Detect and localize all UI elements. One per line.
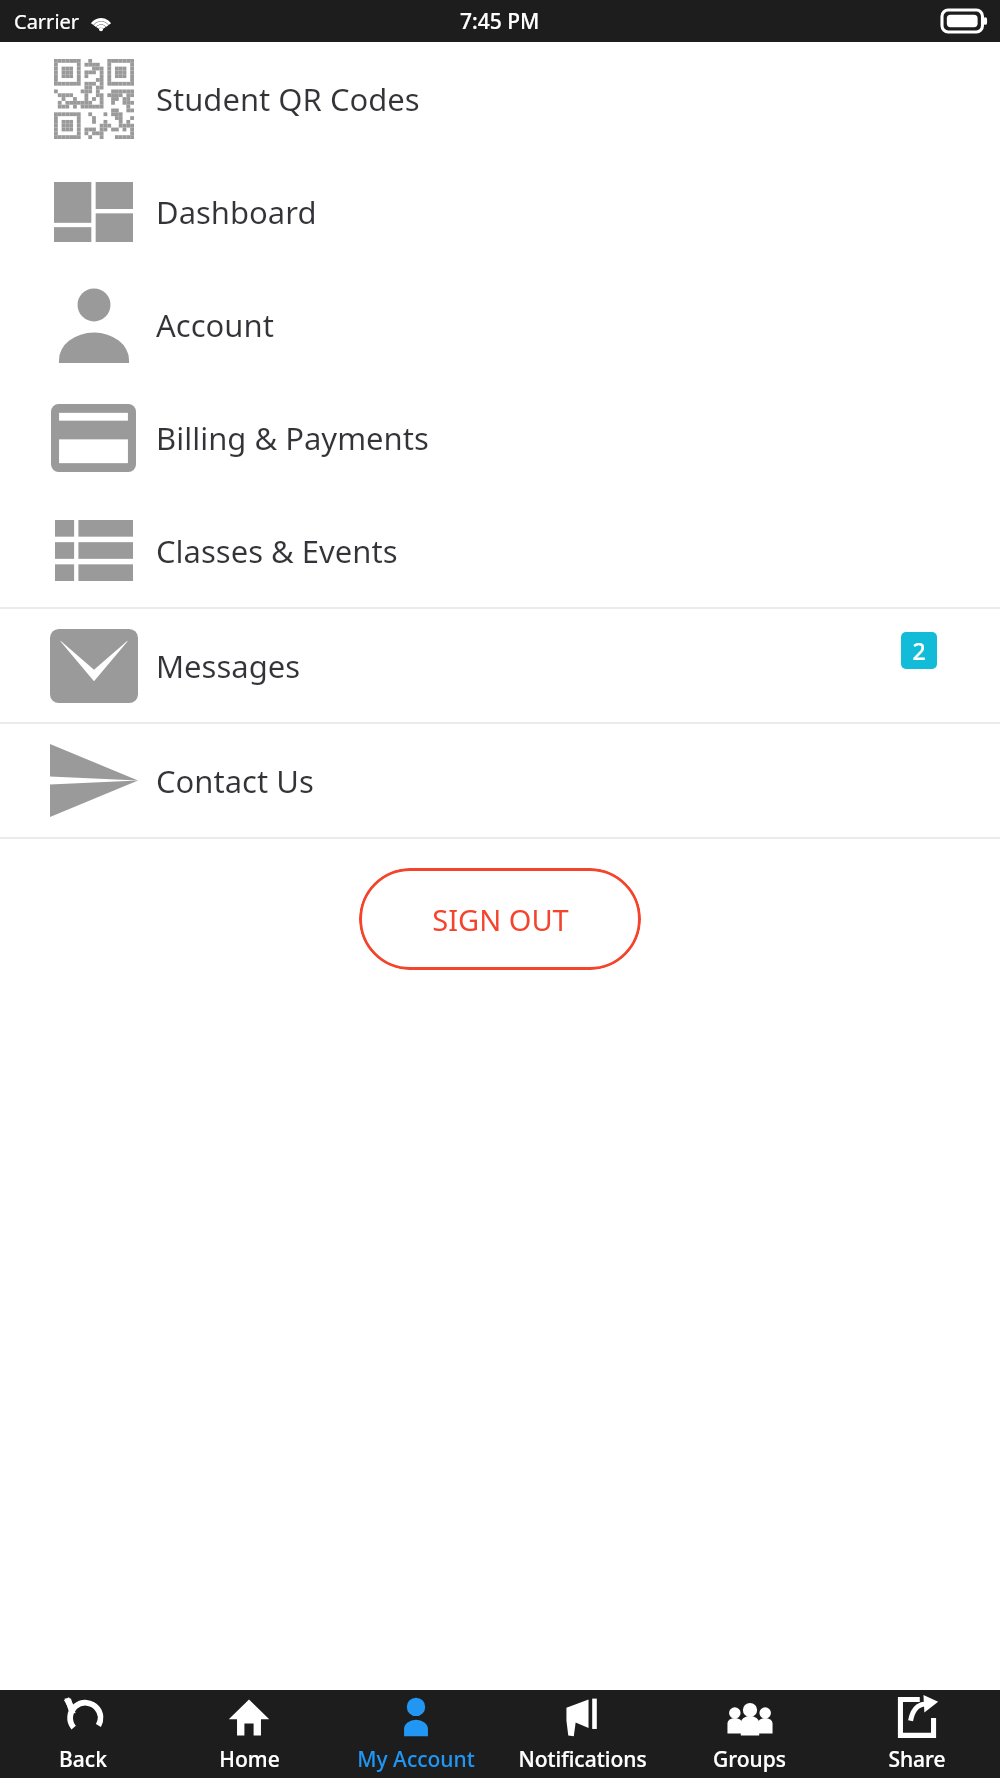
staticText: Carrier [14, 8, 80, 35]
button[interactable]: Home [166, 1690, 332, 1778]
other: Groups [727, 1694, 773, 1740]
button[interactable]: SIGN OUT [359, 868, 641, 970]
staticText: Groups [713, 1745, 786, 1774]
staticText: Account [156, 304, 274, 346]
button[interactable]: Account [0, 268, 1000, 381]
button[interactable]: Notifications [499, 1690, 666, 1778]
button[interactable]: Billing & Payments [0, 381, 1000, 494]
button[interactable]: Classes & Events [0, 494, 1000, 607]
staticText: Billing & Payments [156, 417, 429, 459]
staticText: Contact Us [156, 760, 314, 802]
staticText: Student QR Codes [156, 78, 420, 120]
staticText: Dashboard [156, 191, 317, 233]
staticText: 7:45 PM [460, 7, 540, 36]
other: Notifications [560, 1694, 606, 1740]
button[interactable]: Groups [666, 1690, 833, 1778]
button[interactable]: Contact Us [0, 724, 1000, 837]
button[interactable]: Student QR Codes [0, 42, 1000, 155]
staticText: Home [219, 1745, 280, 1774]
button[interactable]: Back [0, 1690, 166, 1778]
staticText: SIGN OUT [432, 900, 569, 939]
staticText: Classes & Events [156, 530, 398, 572]
button[interactable]: Dashboard [0, 155, 1000, 268]
button[interactable]: Messages [0, 609, 1000, 722]
staticText: 2 [912, 635, 926, 666]
staticText: Share [888, 1745, 946, 1774]
staticText: My Account [357, 1745, 475, 1774]
other: Home [226, 1694, 272, 1740]
staticText: Notifications [518, 1745, 647, 1774]
other: My Account [393, 1694, 439, 1740]
other: Back [60, 1694, 106, 1740]
staticText: Messages [156, 645, 301, 687]
button[interactable]: My Account [332, 1690, 499, 1778]
staticText: Back [59, 1745, 107, 1774]
button[interactable]: Share [833, 1690, 1000, 1778]
other: Share [894, 1694, 940, 1740]
